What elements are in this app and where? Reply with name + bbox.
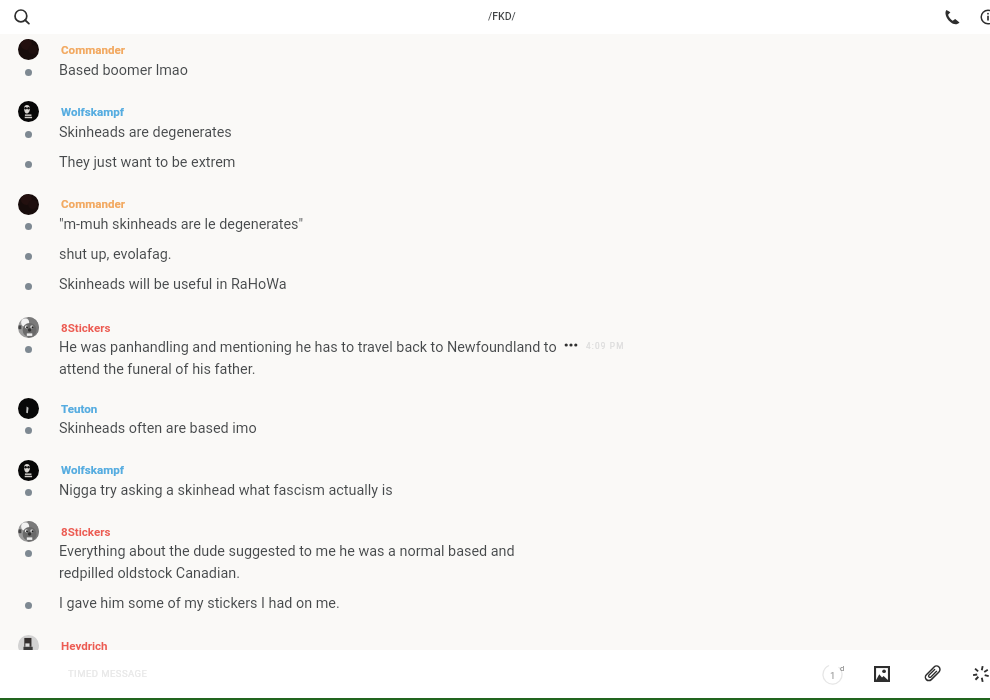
staticText: 4:09 PM [586,341,625,351]
staticText: 8Stickers [61,321,111,335]
staticText: Heydrich [61,639,108,650]
staticText: They just want to be extrem [59,154,236,171]
button[interactable]: Skinheads often are based imo [0,416,990,438]
staticText: TIMED MESSAGE [68,668,148,679]
button[interactable]: I gave him some of my stickers I had on … [0,591,990,613]
button[interactable]: Message timer: 1 day [814,656,850,692]
button[interactable]: He was panhandling and mentioning he has… [0,335,990,357]
staticText: Nigga try asking a skinhead what fascism… [59,482,393,499]
staticText: d [840,664,845,673]
staticText: Skinheads will be useful in RaHoWa [59,276,287,293]
staticText: "m-muh skinheads are le degenerates" [59,216,304,233]
staticText: shut up, evolafag. [59,246,172,263]
button[interactable]: Attach file [914,656,950,692]
button[interactable]: Effects [963,656,990,692]
staticText: Commander [61,43,125,57]
staticText: 1 [830,670,836,681]
button[interactable]: Search [6,1,38,33]
staticText: Commander [61,197,125,211]
button[interactable]: attend the funeral of his father. [0,357,990,379]
button[interactable]: Based boomer lmao [0,58,990,80]
button[interactable]: Info [971,0,990,33]
staticText: Skinheads often are based imo [59,420,257,437]
staticText: Wolfskampf [61,105,124,119]
button[interactable]: Call [935,0,968,33]
button[interactable]: They just want to be extrem [0,150,990,172]
button[interactable]: redpilled oldstock Canadian. [0,561,990,583]
button[interactable]: "m-muh skinheads are le degenerates" [0,212,990,234]
staticText: Wolfskampf [61,463,124,477]
button[interactable]: Nigga try asking a skinhead what fascism… [0,478,990,500]
staticText: attend the funeral of his father. [59,361,256,378]
staticText: He was panhandling and mentioning he has… [59,339,557,356]
staticText: /FKD/ [488,10,516,22]
button[interactable]: Skinheads will be useful in RaHoWa [0,272,990,294]
staticText: redpilled oldstock Canadian. [59,565,240,582]
button[interactable]: /FKD/ [462,0,542,34]
staticText: 8Stickers [61,525,111,539]
button[interactable]: Gallery [864,656,900,692]
staticText: Skinheads are degenerates [59,124,232,141]
staticText: I gave him some of my stickers I had on … [59,595,340,612]
button[interactable]: Skinheads are degenerates [0,120,990,142]
staticText: Teuton [61,402,98,416]
button[interactable]: shut up, evolafag. [0,242,990,264]
staticText: Everything about the dude suggested to m… [59,543,515,560]
staticText: Based boomer lmao [59,62,188,79]
button[interactable]: Everything about the dude suggested to m… [0,539,990,561]
button[interactable]: More options [559,334,583,356]
